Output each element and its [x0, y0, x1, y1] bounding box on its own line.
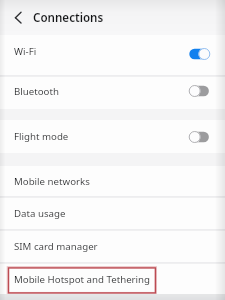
button[interactable]: Mobile Hotspot and Tethering [0, 264, 225, 294]
staticText: Data usage [14, 207, 66, 220]
button[interactable]: On [189, 48, 210, 60]
button[interactable]: Back [6, 4, 32, 30]
button[interactable]: Off [189, 131, 210, 143]
button[interactable]: Mobile networks [0, 166, 225, 196]
staticText: Wi-Fi [14, 45, 37, 58]
staticText: Bluetooth [14, 85, 59, 98]
staticText: Flight mode [14, 130, 69, 143]
button[interactable]: Data usage [0, 198, 225, 229]
button[interactable]: SIM card manager [0, 231, 225, 262]
staticText: Connections [33, 10, 104, 26]
staticText: Mobile Hotspot and Tethering [14, 273, 151, 286]
button[interactable]: Bluetooth [0, 77, 225, 109]
staticText: SIM card manager [14, 240, 98, 253]
button[interactable]: Off [189, 85, 210, 97]
staticText: Mobile networks [14, 175, 90, 188]
button[interactable]: Wi-Fi [0, 35, 225, 75]
button[interactable]: Flight mode [0, 120, 225, 153]
